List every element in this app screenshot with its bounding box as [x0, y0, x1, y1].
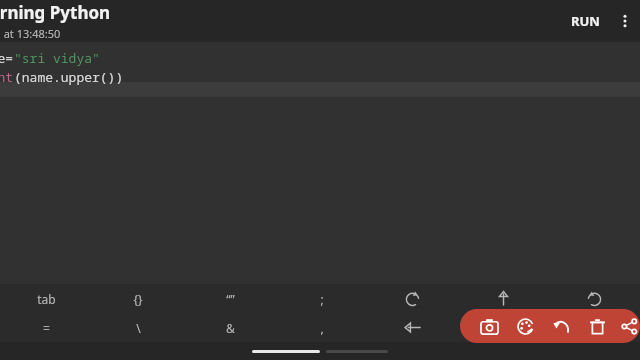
button[interactable]: &	[184, 313, 276, 342]
button[interactable]: tab	[0, 284, 92, 313]
staticText: {}	[133, 291, 143, 307]
staticText: Learning Python	[0, 1, 111, 24]
button[interactable]: =	[0, 313, 92, 342]
button[interactable]: ,	[276, 313, 367, 342]
button[interactable]: Up	[458, 284, 549, 313]
staticText: “”	[226, 291, 235, 307]
button[interactable]: “”	[184, 284, 276, 313]
staticText: "sri vidya"	[14, 49, 100, 67]
staticText: print	[0, 68, 14, 86]
button[interactable]: Left	[367, 313, 458, 342]
staticText: (name.upper())	[14, 68, 124, 86]
staticText: ;	[320, 291, 324, 307]
staticText: tab	[37, 291, 56, 307]
staticText: name=	[0, 49, 14, 67]
staticText: RUN	[571, 12, 600, 30]
button[interactable]: Undo	[546, 311, 576, 341]
staticText: Saved at 13:48:50	[0, 26, 61, 41]
button[interactable]: Redo	[549, 284, 640, 313]
staticText: ,	[320, 320, 324, 336]
button[interactable]: Undo	[367, 284, 458, 313]
staticText: =	[43, 320, 50, 336]
button[interactable]: Share	[618, 311, 640, 341]
button[interactable]: Delete	[582, 311, 612, 341]
button[interactable]: RUN	[561, 4, 610, 38]
button[interactable]: Camera	[474, 311, 504, 341]
staticText: \	[136, 320, 141, 336]
button[interactable]: Theme	[510, 311, 540, 341]
button[interactable]: {}	[92, 284, 184, 313]
button[interactable]: More options	[610, 6, 640, 36]
staticText: &	[226, 320, 235, 336]
button[interactable]: ;	[276, 284, 367, 313]
button[interactable]: \	[92, 313, 184, 342]
